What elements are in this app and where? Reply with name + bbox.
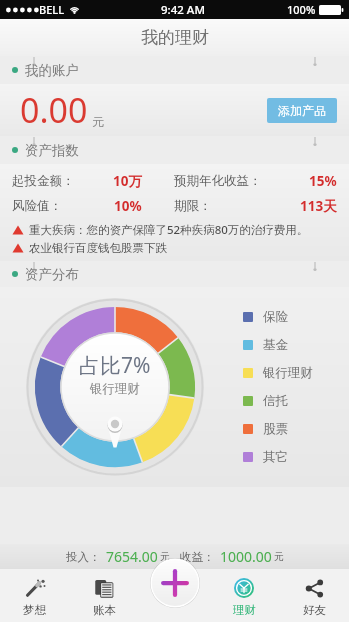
- staticText: 资产指数: [25, 142, 79, 159]
- staticText: 10万: [113, 172, 142, 190]
- button[interactable]: 好友: [279, 569, 349, 622]
- staticText: 7654.00: [106, 547, 158, 566]
- staticText: 我的理财: [141, 27, 209, 48]
- button[interactable]: 银行理财: [243, 359, 335, 387]
- button[interactable]: 股票: [243, 415, 335, 443]
- staticText: BELL: [39, 2, 65, 17]
- staticText: 重大疾病：您的资产保障了52种疾病80万的治疗费用。: [29, 222, 309, 238]
- staticText: 0.00: [20, 87, 88, 133]
- staticText: 预期年化收益：: [174, 173, 262, 189]
- staticText: 9:42 AM: [161, 2, 205, 18]
- staticText: 期限：: [174, 198, 212, 214]
- staticText: 15%: [309, 172, 337, 190]
- staticText: 其它: [263, 449, 288, 465]
- staticText: 梦想: [23, 603, 46, 617]
- button[interactable]: 保险: [243, 303, 335, 331]
- button[interactable]: 其它: [243, 443, 335, 471]
- button[interactable]: 重大疾病：您的资产保障了52种疾病80万的治疗费用。: [0, 222, 349, 238]
- staticText: 保险: [263, 309, 288, 325]
- staticText: 资产分布: [25, 266, 79, 283]
- staticText: 收益：: [180, 550, 215, 564]
- button[interactable]: 添加产品: [267, 98, 337, 123]
- staticText: 起投金额：: [12, 173, 75, 189]
- staticText: 银行理财: [90, 381, 140, 397]
- staticText: 占比7%: [79, 351, 151, 380]
- button[interactable]: 梦想: [0, 569, 69, 622]
- staticText: 10%: [114, 197, 142, 215]
- staticText: 风险值：: [12, 198, 62, 214]
- button[interactable]: 基金: [243, 331, 335, 359]
- button[interactable]: 账本: [69, 569, 139, 622]
- staticText: 银行理财: [263, 365, 313, 381]
- button[interactable]: 添加: [150, 558, 200, 608]
- staticText: 元: [92, 114, 104, 129]
- button[interactable]: 信托: [243, 387, 335, 415]
- staticText: 账本: [93, 603, 116, 617]
- staticText: 113天: [300, 197, 337, 215]
- staticText: 投入：: [66, 550, 101, 564]
- staticText: 我的账户: [25, 62, 79, 79]
- staticText: 1000.00: [220, 547, 272, 566]
- staticText: 添加产品: [278, 103, 326, 118]
- staticText: 好友: [303, 603, 326, 617]
- staticText: 信托: [263, 393, 288, 409]
- staticText: 元: [160, 550, 170, 563]
- staticText: 农业银行百度钱包股票下跌: [29, 241, 167, 255]
- staticText: 理财: [233, 603, 256, 617]
- button[interactable]: 农业银行百度钱包股票下跌: [0, 241, 349, 255]
- staticText: 元: [274, 550, 284, 563]
- staticText: 股票: [263, 421, 288, 437]
- button[interactable]: 理财: [209, 569, 279, 622]
- staticText: 100%: [287, 2, 316, 17]
- staticText: 基金: [263, 337, 288, 353]
